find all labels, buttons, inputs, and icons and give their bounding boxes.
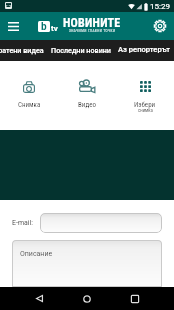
staticText: Аз репортерът: [118, 45, 170, 54]
staticText: Описание: [20, 250, 53, 258]
button[interactable]: Избери: [116, 61, 174, 130]
staticText: снимка: [138, 108, 153, 114]
staticText: tv: [51, 24, 58, 33]
button[interactable]: Изпратени видеа: [0, 39, 45, 60]
staticText: ЗНАЧИМИ ГЛАВНИ ТОЧКИ: [69, 29, 116, 33]
staticText: Изпратени видеа: [0, 46, 44, 54]
button[interactable]: Снимка: [0, 61, 58, 130]
button[interactable]: [40, 213, 162, 233]
button[interactable]: Аз репортерът: [116, 39, 171, 60]
button[interactable]: Видео: [58, 61, 116, 130]
staticText: Снимка: [18, 101, 41, 109]
staticText: 15:29: [150, 2, 170, 11]
button[interactable]: Home: [70, 287, 104, 310]
staticText: b: [41, 21, 47, 32]
button[interactable]: Settings: [146, 12, 174, 40]
staticText: E-mail:: [12, 219, 33, 227]
button[interactable]: Описание: [12, 240, 162, 287]
staticText: Последни новини: [51, 46, 111, 54]
staticText: Видео: [78, 101, 96, 109]
button[interactable]: Menu: [0, 12, 26, 40]
staticText: Избери: [134, 101, 156, 109]
button[interactable]: Последни новини: [46, 39, 116, 60]
staticText: НОВИНИТЕ: [63, 16, 121, 30]
button[interactable]: Recents: [118, 287, 152, 310]
button[interactable]: Back: [22, 287, 56, 310]
